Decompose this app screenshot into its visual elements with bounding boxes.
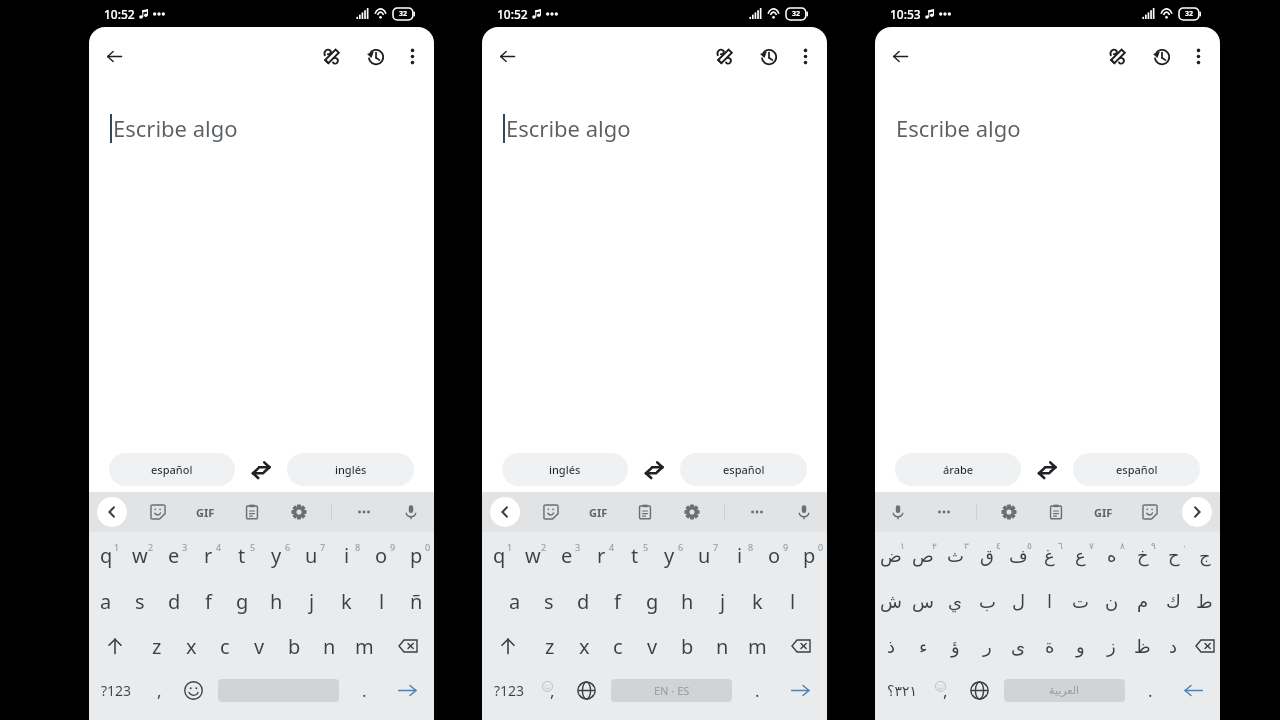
button[interactable]: y: [259, 532, 294, 579]
button[interactable]: z: [140, 624, 174, 668]
button[interactable]: inglés: [502, 453, 628, 486]
button[interactable]: و: [1065, 624, 1096, 668]
button[interactable]: Backspace: [382, 624, 434, 668]
button[interactable]: ,: [141, 668, 177, 712]
button[interactable]: r: [191, 532, 225, 579]
button[interactable]: m: [347, 624, 382, 668]
button[interactable]: ي: [939, 579, 971, 624]
button[interactable]: More: [742, 497, 772, 527]
button[interactable]: u: [294, 532, 329, 579]
button[interactable]: o: [364, 532, 399, 579]
button[interactable]: Clipboard: [237, 497, 267, 527]
button[interactable]: غ: [1034, 532, 1065, 579]
button[interactable]: w: [123, 532, 157, 579]
button[interactable]: ح: [1158, 532, 1189, 579]
button[interactable]: ض: [875, 532, 907, 579]
button[interactable]: español: [680, 453, 807, 486]
button[interactable]: k: [329, 579, 364, 624]
button[interactable]: Shift: [482, 624, 533, 668]
button[interactable]: n: [312, 624, 347, 668]
button[interactable]: Enter: [782, 668, 818, 712]
button[interactable]: Settings: [677, 497, 707, 527]
button[interactable]: ا: [1034, 579, 1065, 624]
button[interactable]: x: [567, 624, 601, 668]
button[interactable]: ر: [971, 624, 1003, 668]
button[interactable]: s: [532, 579, 566, 624]
button[interactable]: Clipboard: [630, 497, 660, 527]
button[interactable]: .: [739, 668, 775, 712]
button[interactable]: Enter: [1175, 668, 1211, 712]
button[interactable]: j: [705, 579, 740, 624]
button[interactable]: More options: [1180, 38, 1216, 74]
button[interactable]: x: [174, 624, 208, 668]
button[interactable]: p: [792, 532, 827, 579]
button[interactable]: español: [109, 453, 235, 486]
button[interactable]: ?123: [489, 668, 529, 712]
button[interactable]: ,: [927, 668, 963, 712]
button[interactable]: ش: [875, 579, 907, 624]
button[interactable]: t: [618, 532, 652, 579]
button[interactable]: j: [294, 579, 329, 624]
button[interactable]: Expand: [1182, 497, 1212, 527]
button[interactable]: Enter: [389, 668, 425, 712]
button[interactable]: Voice: [789, 497, 819, 527]
button[interactable]: f: [600, 579, 635, 624]
button[interactable]: g: [635, 579, 670, 624]
button[interactable]: o: [757, 532, 792, 579]
button[interactable]: e: [550, 532, 584, 579]
button[interactable]: Collapse: [490, 497, 520, 527]
button[interactable]: q: [482, 532, 516, 579]
button[interactable]: s: [123, 579, 157, 624]
button[interactable]: History: [749, 38, 785, 74]
button[interactable]: q: [89, 532, 123, 579]
button[interactable]: GIF: [1088, 497, 1118, 527]
button[interactable]: ‭؟٣٢١‬: [882, 668, 922, 712]
button[interactable]: Collapse: [97, 497, 127, 527]
button[interactable]: Swap languages: [235, 453, 287, 486]
button[interactable]: d: [566, 579, 600, 624]
button[interactable]: inglés: [287, 453, 414, 486]
button[interactable]: ذ: [875, 624, 907, 668]
button[interactable]: ص: [907, 532, 939, 579]
button[interactable]: ى: [1003, 624, 1034, 668]
button[interactable]: Sticker: [143, 497, 173, 527]
button[interactable]: ء: [907, 624, 939, 668]
button[interactable]: ت: [1065, 579, 1096, 624]
button[interactable]: Handwriting: [1100, 38, 1136, 74]
button[interactable]: ث: [939, 532, 971, 579]
button[interactable]: ط: [1189, 579, 1220, 624]
button[interactable]: c: [208, 624, 242, 668]
button[interactable]: f: [191, 579, 225, 624]
button[interactable]: History: [1142, 38, 1178, 74]
button[interactable]: ,: [534, 668, 570, 712]
button[interactable]: ل: [1003, 579, 1034, 624]
button[interactable]: l: [775, 579, 810, 624]
button[interactable]: k: [740, 579, 775, 624]
button[interactable]: Backspace: [1189, 624, 1220, 668]
button[interactable]: y: [652, 532, 687, 579]
button[interactable]: Space: [611, 679, 732, 702]
button[interactable]: z: [533, 624, 567, 668]
button[interactable]: Settings: [284, 497, 314, 527]
button[interactable]: n: [705, 624, 740, 668]
button[interactable]: Sticker: [536, 497, 566, 527]
button[interactable]: ة: [1034, 624, 1065, 668]
button[interactable]: ق: [971, 532, 1003, 579]
button[interactable]: Swap languages: [628, 453, 680, 486]
button[interactable]: m: [740, 624, 775, 668]
button[interactable]: ñ: [399, 579, 434, 624]
button[interactable]: .: [346, 668, 382, 712]
button[interactable]: a: [89, 579, 123, 624]
button[interactable]: Change language: [568, 668, 604, 712]
button[interactable]: árabe: [895, 453, 1021, 486]
button[interactable]: español: [1073, 453, 1200, 486]
button[interactable]: Change language: [961, 668, 997, 712]
button[interactable]: a: [498, 579, 532, 624]
button[interactable]: Handwriting: [707, 38, 743, 74]
button[interactable]: Swap languages: [1021, 453, 1073, 486]
button[interactable]: More options: [394, 38, 430, 74]
button[interactable]: ه: [1096, 532, 1127, 579]
button[interactable]: Emoji: [175, 668, 211, 712]
button[interactable]: GIF: [190, 497, 220, 527]
